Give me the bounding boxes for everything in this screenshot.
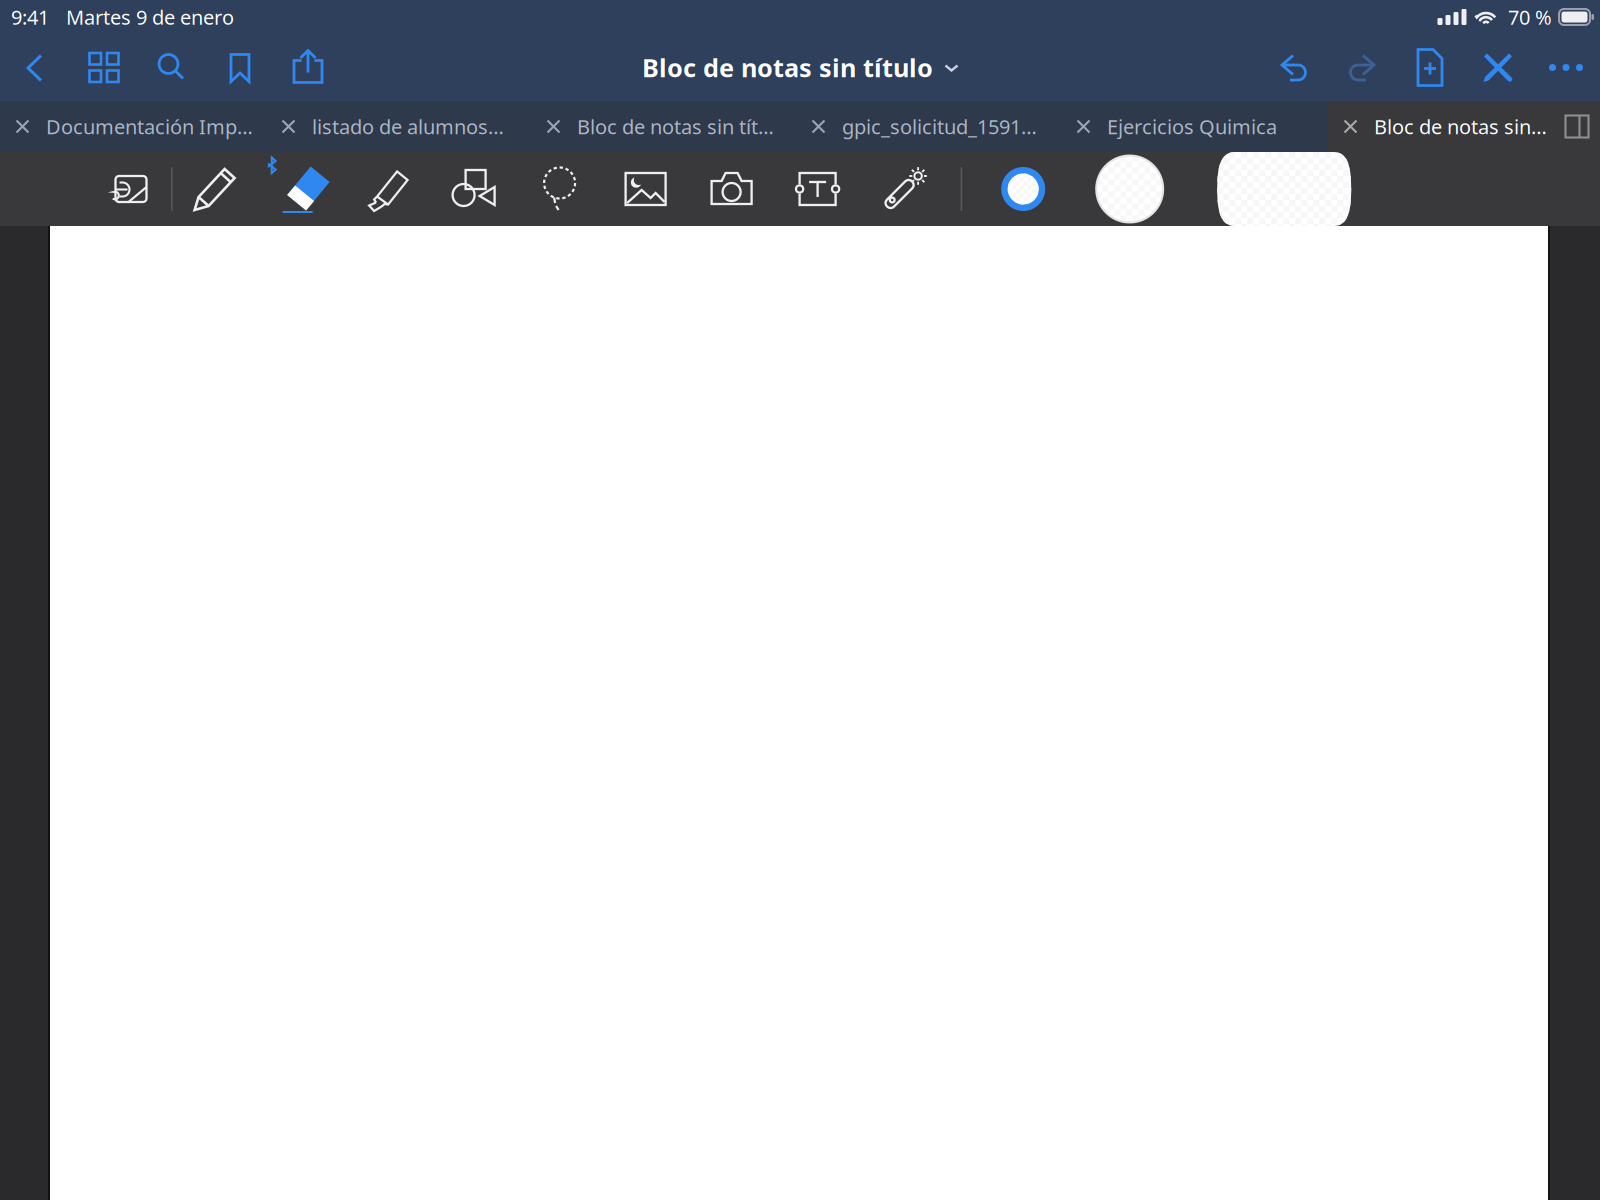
button[interactable]: Colour palette (1217, 152, 1351, 226)
staticText: Ejercicios Quimica (1107, 113, 1277, 140)
button[interactable]: Highlighter (345, 152, 431, 226)
button[interactable]: Redo (1328, 34, 1396, 101)
button[interactable]: Bloc de notas sin… (1328, 101, 1554, 152)
button[interactable]: Page options (85, 152, 171, 226)
staticText: Documentación Imp… (46, 113, 253, 140)
staticText: Bloc de notas sin título (642, 51, 933, 84)
button[interactable]: Split view (1554, 101, 1600, 152)
staticText: Bloc de notas sin… (1374, 113, 1547, 140)
button[interactable]: Colour picker (1096, 152, 1163, 226)
staticText: 70 % (1508, 4, 1552, 30)
button[interactable]: Magic wand (861, 152, 947, 226)
button[interactable]: Shapes (431, 152, 517, 226)
button[interactable]: Documentación Imp… (0, 101, 266, 152)
button[interactable]: New page (1396, 34, 1464, 101)
button[interactable]: Markup (1464, 34, 1532, 101)
button[interactable]: Bloc de notas sin tít… (531, 101, 796, 152)
button[interactable]: Bloc de notas sin título (642, 34, 960, 101)
button[interactable]: More (1532, 34, 1600, 101)
button[interactable]: Lasso (517, 152, 603, 226)
staticText: Martes 9 de enero (66, 4, 234, 30)
button[interactable]: Back (2, 34, 70, 101)
staticText: Bloc de notas sin tít… (577, 113, 774, 140)
button[interactable]: Bookmark (206, 34, 274, 101)
button[interactable]: Undo (1260, 34, 1328, 101)
staticText: 9:41 (11, 4, 49, 30)
button[interactable]: Ejercicios Quimica (1061, 101, 1328, 152)
button[interactable]: gpic_solicitud_1591… (796, 101, 1061, 152)
button[interactable]: Text box (775, 152, 861, 226)
button[interactable]: Selected colour (987, 152, 1059, 226)
button[interactable]: Eraser (259, 152, 345, 226)
button[interactable]: Share (274, 34, 342, 101)
button[interactable]: Pen (173, 152, 259, 226)
button[interactable]: Thumbnails (70, 34, 138, 101)
button[interactable]: listado de alumnos… (266, 101, 531, 152)
staticText: listado de alumnos… (312, 113, 504, 140)
staticText: gpic_solicitud_1591… (842, 113, 1037, 140)
button[interactable]: Insert photo (603, 152, 689, 226)
button[interactable]: Search (138, 34, 206, 101)
button[interactable]: Camera (689, 152, 775, 226)
